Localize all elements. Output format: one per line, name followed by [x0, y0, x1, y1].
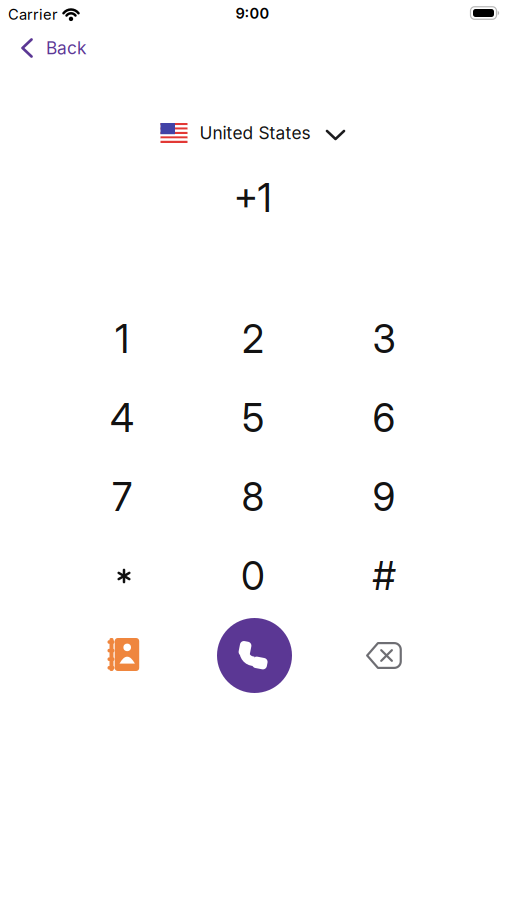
- button[interactable]: Delete: [356, 630, 412, 680]
- staticText: Back: [46, 38, 87, 58]
- staticText: 4: [110, 395, 134, 441]
- staticText: 0: [241, 553, 265, 599]
- button[interactable]: United States: [160, 123, 345, 143]
- button[interactable]: [56, 536, 187, 615]
- staticText: 3: [372, 316, 395, 362]
- button[interactable]: 9: [318, 457, 449, 536]
- button[interactable]: 4: [56, 378, 187, 457]
- button[interactable]: 2: [187, 299, 318, 378]
- staticText: 2: [242, 316, 264, 362]
- staticText: 9:00: [235, 5, 269, 22]
- button[interactable]: Call: [217, 618, 292, 693]
- staticText: 8: [241, 474, 264, 520]
- staticText: 1: [115, 316, 129, 362]
- staticText: #: [372, 553, 395, 599]
- button[interactable]: #: [318, 536, 449, 615]
- button[interactable]: 6: [318, 378, 449, 457]
- staticText: 5: [242, 395, 264, 441]
- staticText: Carrier: [8, 6, 58, 23]
- staticText: United States: [199, 123, 310, 143]
- button[interactable]: Back: [21, 38, 87, 58]
- button[interactable]: 8: [187, 457, 318, 536]
- button[interactable]: 5: [187, 378, 318, 457]
- staticText: +1: [233, 175, 271, 221]
- staticText: 6: [372, 395, 395, 441]
- staticText: 7: [112, 474, 132, 520]
- button[interactable]: Contacts: [94, 624, 154, 684]
- button[interactable]: 1: [56, 299, 187, 378]
- staticText: 9: [372, 474, 395, 520]
- button[interactable]: 0: [187, 536, 318, 615]
- button[interactable]: 3: [318, 299, 449, 378]
- button[interactable]: 7: [56, 457, 187, 536]
